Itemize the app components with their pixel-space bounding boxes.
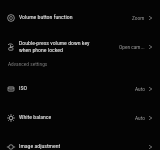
staticText: Open cam... bbox=[119, 44, 145, 50]
staticText: Advanced settings bbox=[8, 61, 48, 67]
staticText: White balance bbox=[19, 114, 52, 121]
staticText: Auto bbox=[135, 86, 145, 92]
staticText: Double-press volume down key bbox=[19, 40, 90, 47]
button[interactable]: White balance bbox=[0, 103, 160, 132]
button[interactable]: Double-press volume down key bbox=[0, 32, 160, 61]
staticText: Zoom bbox=[132, 15, 145, 21]
staticText: Image adjustment bbox=[19, 143, 61, 150]
staticText: Volume button function bbox=[19, 14, 73, 21]
button[interactable]: Image adjustment bbox=[0, 132, 160, 150]
staticText: Auto bbox=[135, 115, 145, 121]
button[interactable]: ISO bbox=[0, 74, 160, 103]
staticText: ISO bbox=[19, 85, 27, 92]
staticText: when phone locked bbox=[19, 47, 63, 54]
button[interactable]: Volume button function bbox=[0, 3, 160, 32]
